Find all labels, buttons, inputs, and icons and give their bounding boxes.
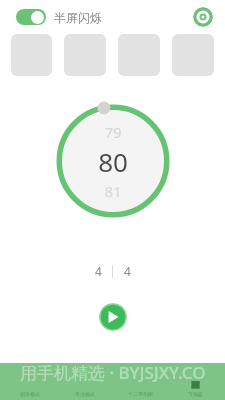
button[interactable]: Preset 2 <box>64 34 106 76</box>
staticText: 节拍器 <box>188 391 203 397</box>
staticText: 专业模式 <box>75 391 95 397</box>
button[interactable]: 4 <box>113 261 141 281</box>
staticText: 80 <box>98 144 128 179</box>
button[interactable]: 初学模式 <box>5 391 55 397</box>
staticText: 79 <box>104 122 122 142</box>
staticText: 4 <box>95 263 102 279</box>
staticText: 初学模式 <box>20 391 40 397</box>
button[interactable]: Play <box>99 303 127 331</box>
button[interactable]: Preset 1 <box>11 34 52 76</box>
button[interactable]: 4 <box>84 261 112 281</box>
staticText: 十二平均律 <box>128 391 153 397</box>
button[interactable]: BPM dial 80 <box>55 103 171 219</box>
button[interactable]: 节拍器 <box>170 379 220 397</box>
staticText: 4 <box>124 263 131 279</box>
button[interactable]: Settings <box>193 7 213 27</box>
button[interactable]: 十二平均律 <box>115 391 165 397</box>
button[interactable]: Preset 3 <box>118 34 160 76</box>
button[interactable]: Toggle half screen flash <box>16 9 46 25</box>
staticText: 用手机精选 · BYJSJXY.CO <box>20 361 206 384</box>
button[interactable]: Preset 4 <box>172 34 214 76</box>
staticText: 81 <box>104 181 122 201</box>
staticText: 半屏闪烁 <box>54 10 102 25</box>
button[interactable]: 专业模式 <box>60 391 110 397</box>
